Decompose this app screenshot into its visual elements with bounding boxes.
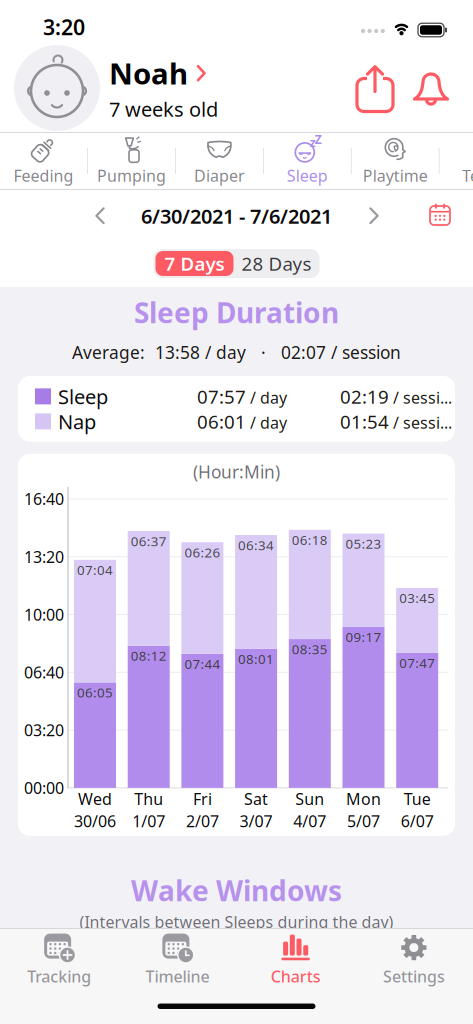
staticText: Settings — [383, 966, 445, 987]
staticText: Thu — [134, 788, 163, 809]
staticText: 08:35 — [292, 640, 328, 658]
staticText: Wake Windows — [131, 872, 342, 909]
staticText: (Intervals between Sleeps during the day… — [79, 911, 393, 932]
staticText: Diaper — [194, 165, 245, 186]
button[interactable]: Next week — [369, 207, 379, 225]
staticText: Sleep — [58, 383, 108, 410]
staticText: 06:26 — [184, 543, 220, 561]
staticText: Tue — [404, 788, 431, 809]
staticText: 10:00 — [24, 604, 64, 625]
staticText: 2/07 — [186, 810, 219, 832]
staticText: 6/07 — [401, 810, 434, 832]
staticText: (Hour:Min) — [193, 460, 280, 483]
staticText: Feeding — [14, 165, 74, 186]
button[interactable]: Charts — [236, 929, 355, 991]
staticText: Sun — [295, 788, 324, 809]
button[interactable]: Share — [355, 64, 395, 111]
button[interactable]: Settings — [355, 929, 473, 991]
staticText: Sat — [244, 788, 268, 809]
staticText: 03:20 — [24, 719, 64, 741]
staticText: 7 Days — [164, 251, 224, 276]
staticText: Tracking — [27, 966, 91, 987]
staticText: 6/30/2021 - 7/6/2021 — [141, 203, 332, 229]
button[interactable]: z — [264, 132, 351, 189]
staticText: 01:54 / sessi... — [340, 409, 452, 434]
button[interactable]: Pumping — [88, 132, 175, 189]
staticText: 06:34 — [238, 536, 274, 554]
staticText: Playtime — [363, 165, 428, 186]
staticText: 06:05 — [77, 683, 113, 701]
staticText: Z — [315, 131, 322, 147]
staticText: 13:20 — [24, 546, 64, 567]
staticText: Charts — [271, 966, 321, 987]
staticText: 5/07 — [347, 810, 380, 832]
button[interactable]: Temp — [439, 132, 473, 189]
staticText: 08:12 — [131, 647, 167, 664]
staticText: 06:18 — [292, 531, 328, 549]
button[interactable]: Previous week — [95, 207, 105, 225]
staticText: 06:37 — [131, 532, 167, 550]
button[interactable]: Feeding — [0, 132, 87, 189]
staticText: 06:01 / day — [197, 409, 287, 434]
staticText: 4/07 — [293, 810, 326, 832]
staticText: 08:01 — [238, 650, 274, 668]
staticText: Sleep — [287, 165, 328, 186]
staticText: 07:57 / day — [197, 384, 287, 409]
button[interactable]: Timeline — [118, 929, 236, 991]
staticText: Fri — [193, 788, 212, 809]
button[interactable]: Baby profile photo — [14, 45, 100, 131]
staticText: 16:40 — [24, 488, 64, 509]
staticText: 07:04 — [77, 561, 113, 579]
button[interactable]: Tracking — [0, 929, 118, 991]
staticText: 06:40 — [24, 662, 64, 683]
staticText: Sleep Duration — [134, 294, 339, 331]
staticText: Wed — [78, 788, 112, 809]
button[interactable]: Notifications — [411, 68, 451, 108]
button[interactable]: Diaper — [176, 132, 263, 189]
staticText: 07:44 — [184, 655, 220, 673]
staticText: 09:17 — [345, 628, 381, 646]
staticText: 02:19 / sessi... — [340, 384, 452, 409]
button[interactable]: Playtime — [352, 132, 439, 189]
staticText: 7 weeks old — [109, 96, 218, 122]
staticText: z — [310, 134, 316, 150]
button[interactable]: 7 Days — [154, 249, 234, 278]
staticText: Timeline — [145, 966, 209, 987]
staticText: 3:20 — [43, 13, 85, 41]
staticText: 1/07 — [132, 810, 165, 832]
staticText: 07:47 — [399, 654, 435, 672]
button[interactable]: Pick a date — [429, 204, 450, 225]
staticText: Nap — [58, 408, 96, 435]
staticText: 28 Days — [241, 251, 311, 276]
staticText: 30/06 — [74, 810, 116, 832]
staticText: Noah — [109, 54, 188, 93]
staticText: Temp — [462, 165, 473, 186]
staticText: Pumping — [97, 165, 166, 186]
button[interactable]: Noah — [100, 54, 218, 122]
staticText: 03:45 — [399, 589, 435, 607]
staticText: 05:23 — [345, 535, 381, 552]
staticText: Average: 13:58 / day · 02:07 / session — [72, 341, 401, 364]
staticText: 00:00 — [24, 777, 64, 798]
staticText: Mon — [346, 788, 381, 809]
staticText: 3/07 — [240, 810, 273, 832]
button[interactable]: 28 Days — [234, 249, 318, 278]
